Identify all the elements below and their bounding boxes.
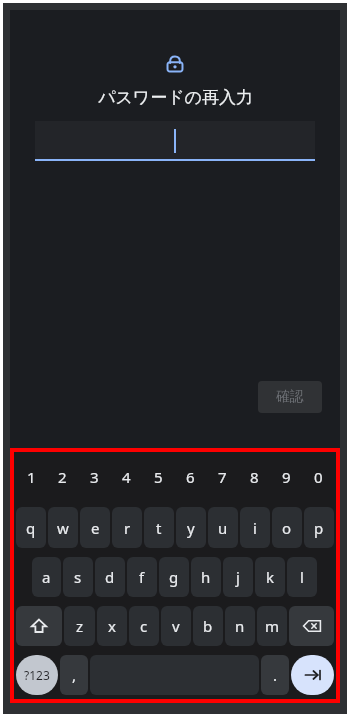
staticText: 4 xyxy=(122,467,131,487)
staticText: l xyxy=(300,567,304,587)
staticText: w xyxy=(57,518,69,538)
staticText: x xyxy=(108,616,116,636)
staticText: 1 xyxy=(27,467,36,487)
button[interactable]: l xyxy=(287,557,317,597)
button[interactable]: 9 xyxy=(270,452,302,502)
button[interactable]: Shift xyxy=(16,606,62,646)
staticText: 7 xyxy=(218,467,227,487)
button[interactable]: j xyxy=(223,557,253,597)
staticText: o xyxy=(282,518,292,538)
staticText: k xyxy=(266,567,275,587)
staticText: j xyxy=(236,567,240,587)
button[interactable]: f xyxy=(127,557,157,597)
staticText: y xyxy=(187,518,195,538)
staticText: m xyxy=(265,616,280,636)
button[interactable]: m xyxy=(257,606,287,646)
button[interactable]: . xyxy=(261,655,289,695)
staticText: d xyxy=(105,567,115,587)
staticText: 5 xyxy=(154,467,163,487)
button[interactable]: i xyxy=(240,507,270,548)
button[interactable]: h xyxy=(191,557,221,597)
button[interactable]: r xyxy=(112,507,142,548)
button[interactable]: e xyxy=(80,507,110,548)
button[interactable]: 4 xyxy=(110,452,142,502)
staticText: a xyxy=(42,567,51,587)
staticText: 2 xyxy=(58,467,67,487)
staticText: z xyxy=(76,616,84,636)
button[interactable]: u xyxy=(208,507,238,548)
button[interactable]: d xyxy=(95,557,125,597)
button[interactable]: q xyxy=(16,507,46,548)
button[interactable]: 1 xyxy=(16,452,47,502)
button[interactable]: Enter xyxy=(291,655,334,695)
staticText: q xyxy=(26,518,36,538)
staticText: パスワードの再入力 xyxy=(98,87,253,108)
button[interactable]: 2 xyxy=(47,452,78,502)
button[interactable]: 7 xyxy=(206,452,238,502)
staticText: v xyxy=(172,616,180,636)
other: Lock xyxy=(164,53,186,75)
staticText: e xyxy=(91,518,100,538)
staticText: p xyxy=(314,518,324,538)
button[interactable]: b xyxy=(193,606,223,646)
staticText: 6 xyxy=(186,467,195,487)
button[interactable]: Backspace xyxy=(289,606,334,646)
staticText: t xyxy=(156,518,162,538)
staticText: , xyxy=(72,665,77,685)
button[interactable]: x xyxy=(97,606,127,646)
button[interactable] xyxy=(35,121,315,161)
staticText: 0 xyxy=(314,467,323,487)
staticText: b xyxy=(203,616,213,636)
button[interactable]: w xyxy=(48,507,78,548)
button[interactable]: t xyxy=(144,507,174,548)
button[interactable]: 8 xyxy=(238,452,270,502)
button[interactable]: y xyxy=(176,507,206,548)
staticText: 8 xyxy=(250,467,259,487)
staticText: 確認 xyxy=(276,388,304,406)
staticText: r xyxy=(124,518,131,538)
button[interactable]: v xyxy=(161,606,191,646)
staticText: . xyxy=(273,665,278,685)
button[interactable]: s xyxy=(63,557,93,597)
button[interactable]: ?123 xyxy=(16,655,58,695)
staticText: ?123 xyxy=(24,667,50,683)
button[interactable]: c xyxy=(129,606,159,646)
button[interactable]: , xyxy=(60,655,88,695)
staticText: h xyxy=(201,567,211,587)
button[interactable]: o xyxy=(272,507,302,548)
staticText: 3 xyxy=(90,467,99,487)
button[interactable]: 5 xyxy=(142,452,174,502)
button[interactable]: g xyxy=(159,557,189,597)
staticText: f xyxy=(139,567,145,587)
staticText: n xyxy=(235,616,245,636)
staticText: 9 xyxy=(282,467,291,487)
button[interactable]: z xyxy=(64,606,95,646)
staticText: u xyxy=(218,518,228,538)
button[interactable]: a xyxy=(32,557,61,597)
button[interactable]: p xyxy=(304,507,334,548)
button[interactable]: k xyxy=(255,557,285,597)
staticText: g xyxy=(169,567,179,587)
staticText: s xyxy=(74,567,82,587)
button[interactable]: 3 xyxy=(78,452,110,502)
staticText: i xyxy=(253,518,257,538)
button[interactable]: 6 xyxy=(174,452,206,502)
button[interactable]: n xyxy=(225,606,255,646)
staticText: c xyxy=(140,616,148,636)
button[interactable]: 0 xyxy=(302,452,334,502)
button[interactable]: 確認 xyxy=(258,381,322,413)
